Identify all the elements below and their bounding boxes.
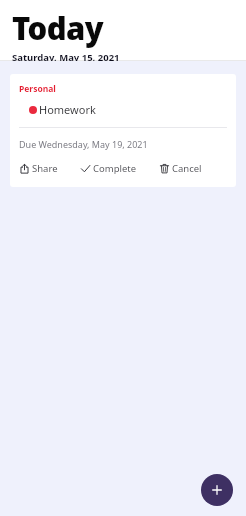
button[interactable]: Share xyxy=(19,162,58,175)
staticText: Cancel xyxy=(172,162,202,175)
staticText: Due Wednesday, May 19, 2021 xyxy=(19,138,148,150)
staticText: Today xyxy=(12,7,104,49)
button[interactable]: Add task xyxy=(201,474,233,506)
staticText: Personal xyxy=(19,83,56,95)
staticText: Homework xyxy=(39,102,96,117)
staticText: Saturday, May 15, 2021 xyxy=(12,51,120,61)
button[interactable]: Complete xyxy=(80,162,137,175)
button[interactable]: Cancel xyxy=(159,162,202,175)
button[interactable]: Personal xyxy=(10,74,236,187)
staticText: Complete xyxy=(93,162,137,175)
staticText: Share xyxy=(32,162,58,175)
